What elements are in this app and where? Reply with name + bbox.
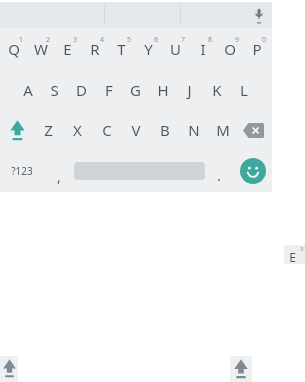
- staticText: K: [212, 80, 222, 100]
- staticText: C: [102, 120, 112, 140]
- staticText: Z: [44, 120, 53, 140]
- staticText: E: [63, 39, 72, 59]
- staticText: 0: [262, 35, 267, 45]
- button[interactable]: Q: [0, 28, 27, 69]
- staticText: Q: [8, 39, 20, 59]
- staticText: A: [23, 80, 33, 100]
- button[interactable]: G: [122, 69, 149, 110]
- button[interactable]: Voice input: [246, 2, 272, 28]
- button[interactable]: Backspace: [237, 110, 270, 150]
- button[interactable]: L: [230, 69, 257, 110]
- staticText: G: [130, 80, 141, 100]
- button[interactable]: Y: [135, 28, 162, 69]
- button[interactable]: S: [41, 69, 68, 110]
- staticText: W: [34, 39, 48, 59]
- staticText: Y: [144, 39, 153, 59]
- button[interactable]: N: [179, 110, 208, 150]
- button[interactable]: F: [95, 69, 122, 110]
- button[interactable]: R: [81, 28, 108, 69]
- staticText: X: [73, 120, 82, 140]
- staticText: T: [117, 39, 126, 59]
- staticText: 2: [46, 35, 51, 45]
- button[interactable]: ,: [44, 150, 74, 192]
- button[interactable]: Shift: [230, 356, 252, 382]
- button[interactable]: .: [205, 150, 233, 192]
- button[interactable]: M: [208, 110, 237, 150]
- button[interactable]: T: [108, 28, 135, 69]
- button[interactable]: Z: [34, 110, 63, 150]
- button[interactable]: X: [63, 110, 92, 150]
- button[interactable]: V: [121, 110, 150, 150]
- staticText: O: [224, 39, 236, 59]
- button[interactable]: K: [203, 69, 230, 110]
- button[interactable]: ?123: [0, 150, 44, 192]
- button[interactable]: J: [176, 69, 203, 110]
- button[interactable]: D: [68, 69, 95, 110]
- staticText: 1: [19, 35, 24, 45]
- staticText: 3: [73, 35, 78, 45]
- staticText: 7: [181, 35, 186, 45]
- button[interactable]: W: [27, 28, 54, 69]
- staticText: 6: [154, 35, 159, 45]
- button[interactable]: B: [150, 110, 179, 150]
- staticText: L: [240, 80, 248, 100]
- staticText: F: [105, 80, 113, 100]
- staticText: D: [76, 80, 87, 100]
- staticText: ,: [57, 167, 61, 186]
- staticText: M: [216, 120, 230, 140]
- staticText: ?123: [11, 164, 33, 178]
- staticText: 8: [208, 35, 213, 45]
- staticText: E: [289, 249, 296, 265]
- staticText: U: [170, 39, 181, 59]
- staticText: 9: [235, 35, 240, 45]
- staticText: J: [187, 80, 192, 100]
- button[interactable]: U: [162, 28, 189, 69]
- staticText: H: [157, 80, 169, 100]
- staticText: 3: [300, 245, 304, 253]
- button[interactable]: Shift: [0, 110, 34, 150]
- button[interactable]: O: [216, 28, 243, 69]
- button[interactable]: I: [189, 28, 216, 69]
- staticText: .: [217, 166, 221, 185]
- button[interactable]: H: [149, 69, 176, 110]
- staticText: N: [188, 120, 200, 140]
- button[interactable]: E: [54, 28, 81, 69]
- staticText: 4: [100, 35, 105, 45]
- staticText: R: [90, 39, 100, 59]
- button[interactable]: A: [14, 69, 41, 110]
- button[interactable]: P: [243, 28, 270, 69]
- staticText: 5: [127, 35, 132, 45]
- staticText: V: [131, 120, 141, 140]
- button[interactable]: C: [92, 110, 121, 150]
- button[interactable]: Space: [74, 150, 205, 192]
- staticText: P: [252, 39, 262, 59]
- staticText: S: [50, 80, 59, 100]
- button[interactable]: Shift: [0, 356, 18, 382]
- staticText: I: [200, 39, 206, 59]
- button[interactable]: E: [284, 245, 305, 264]
- staticText: B: [160, 120, 170, 140]
- button[interactable]: Emoji: [233, 150, 272, 192]
